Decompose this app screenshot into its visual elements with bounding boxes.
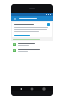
button[interactable]: Recent apps: [42, 87, 46, 91]
button[interactable]: Back: [19, 87, 23, 91]
button[interactable]: Info: [12, 22, 52, 37]
button[interactable]: [11, 41, 53, 47]
button[interactable]: Info: [47, 23, 50, 26]
button[interactable]: Home: [30, 87, 34, 91]
button[interactable]: Open navigation menu: [13, 17, 17, 21]
button[interactable]: [11, 47, 53, 53]
